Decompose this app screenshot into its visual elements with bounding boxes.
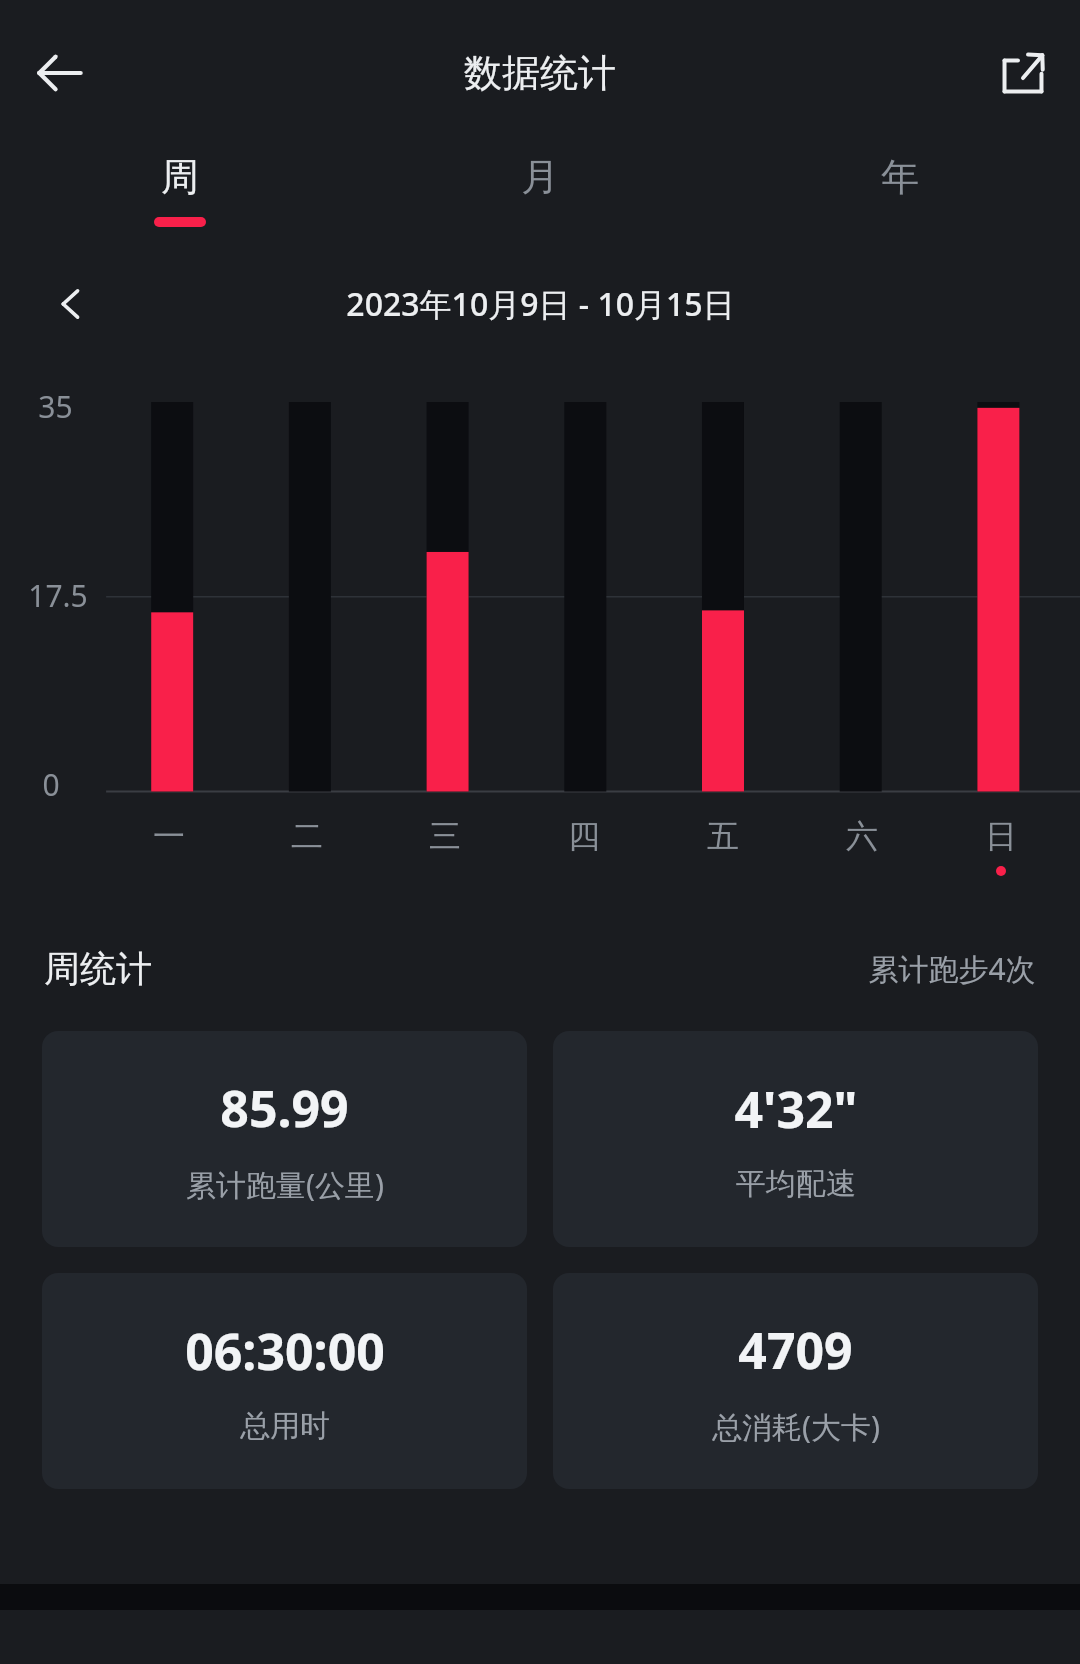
staticText: 17.5: [28, 575, 88, 616]
staticText: 二: [291, 816, 323, 856]
staticText: 平均配速: [736, 1165, 856, 1203]
staticText: 06:30:00: [185, 1317, 385, 1385]
button[interactable]: 月: [360, 145, 720, 227]
staticText: 五: [707, 816, 739, 856]
staticText: 数据统计: [464, 49, 616, 97]
button[interactable]: 4'32": [553, 1031, 1038, 1247]
staticText: 周统计: [44, 946, 152, 991]
button[interactable]: Share: [992, 42, 1054, 104]
staticText: 总用时: [240, 1407, 330, 1445]
staticText: 月: [521, 153, 559, 201]
staticText: 日: [985, 816, 1017, 856]
button[interactable]: 年: [720, 145, 1080, 227]
button[interactable]: 4709: [553, 1273, 1038, 1489]
staticText: 4'32": [734, 1075, 858, 1143]
staticText: 4709: [738, 1316, 853, 1384]
button[interactable]: 周: [0, 145, 360, 227]
staticText: 六: [846, 816, 878, 856]
staticText: 0: [42, 764, 60, 805]
button[interactable]: 85.99: [42, 1031, 527, 1247]
staticText: 总消耗(大卡): [712, 1406, 880, 1447]
button[interactable]: Back: [28, 41, 92, 105]
staticText: 2023年10月9日 - 10月15日: [346, 282, 735, 326]
staticText: 年: [881, 153, 919, 201]
button[interactable]: 06:30:00: [42, 1273, 527, 1489]
staticText: 周: [161, 153, 199, 201]
button[interactable]: Previous week: [42, 275, 100, 333]
staticText: 三: [429, 816, 461, 856]
staticText: 累计跑步4次: [868, 948, 1036, 989]
staticText: 一: [153, 816, 185, 856]
staticText: 85.99: [220, 1074, 349, 1142]
staticText: 35: [38, 386, 73, 427]
staticText: 四: [568, 816, 600, 856]
staticText: 累计跑量(公里): [186, 1164, 384, 1205]
